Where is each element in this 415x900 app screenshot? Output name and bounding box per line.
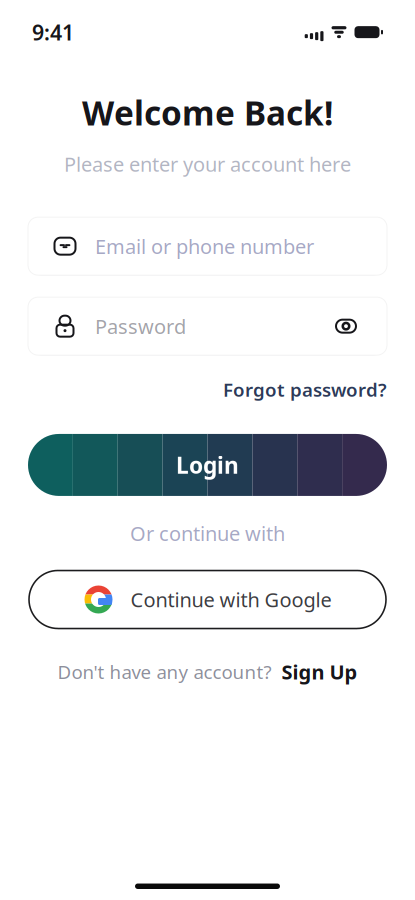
staticText: Sign Up [281,658,357,685]
staticText: Login [176,450,239,480]
staticText: Continue with Google [130,586,331,613]
staticText: Forgot password? [223,377,387,402]
staticText: 9:41 [32,18,74,46]
staticText: Or continue with [130,520,285,546]
staticText: Don't have any account? [57,659,271,684]
staticText: Welcome Back! [82,90,333,135]
button[interactable]: Forgot password? [213,371,387,408]
staticText: Password [95,313,186,339]
staticText: Please enter your account here [64,151,351,177]
button[interactable]: Show password [331,311,361,341]
staticText: Email or phone number [95,233,314,259]
button[interactable]: Login [28,434,387,496]
button[interactable]: Sign Up [281,658,357,685]
button[interactable]: Continue with Google [29,570,386,628]
